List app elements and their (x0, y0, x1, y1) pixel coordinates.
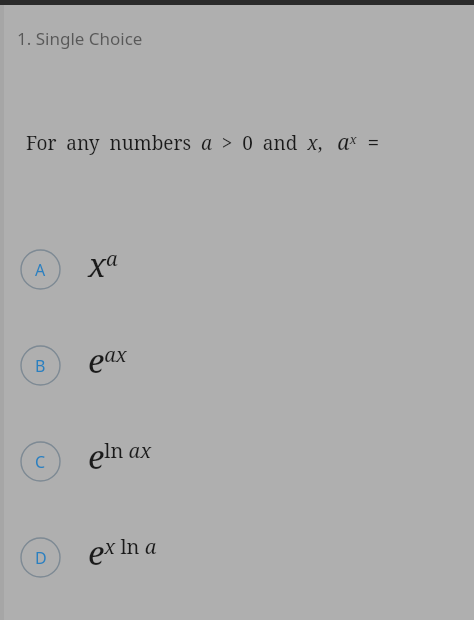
staticText: 1. Single Choice (17, 27, 143, 50)
staticText: A (35, 259, 46, 281)
staticText: xa (88, 242, 118, 287)
button[interactable]: D (0, 509, 474, 605)
button[interactable]: 1. Single Choice (0, 27, 474, 50)
button[interactable]: C (0, 413, 474, 509)
staticText: D (35, 547, 47, 569)
staticText: C (35, 451, 46, 473)
staticText: eax (88, 338, 127, 383)
button[interactable]: B (0, 317, 474, 413)
staticText: ex ln a (88, 530, 157, 575)
staticText: B (35, 355, 46, 377)
button[interactable]: A (0, 221, 474, 317)
staticText: eln ax (88, 434, 152, 479)
staticText: For any numbers a > 0 and x, ax = (26, 128, 380, 157)
